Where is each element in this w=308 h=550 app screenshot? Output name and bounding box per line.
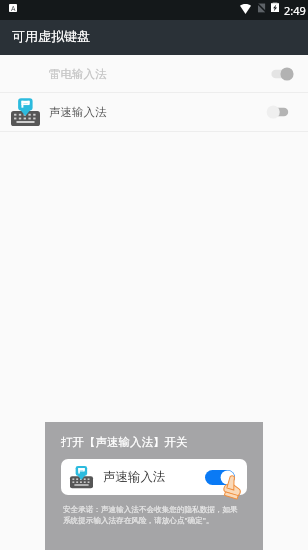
staticText: 安全承诺：声速输入法不会收集您的隐私数据，如果系统提示输入法存在风险，请放心点"… (63, 505, 245, 525)
staticText: 声速输入法 (49, 105, 107, 119)
staticText: A (11, 4, 16, 12)
button[interactable]: 雷电输入法 (0, 55, 308, 92)
button[interactable]: 声速输入法 (0, 93, 308, 131)
staticText: 打开【声速输入法】开关 (61, 435, 188, 449)
staticText: 雷电输入法 (49, 67, 107, 81)
staticText: 声速输入法 (103, 469, 166, 485)
button[interactable]: 声速输入法 (61, 459, 247, 495)
button[interactable]: 可用虚拟键盘 (0, 20, 308, 55)
button[interactable]: On (259, 58, 308, 90)
staticText: 可用虚拟键盘 (12, 28, 90, 44)
button[interactable]: Off (259, 96, 308, 128)
other: Tap here (224, 475, 242, 498)
staticText: 2:49 (284, 3, 306, 18)
